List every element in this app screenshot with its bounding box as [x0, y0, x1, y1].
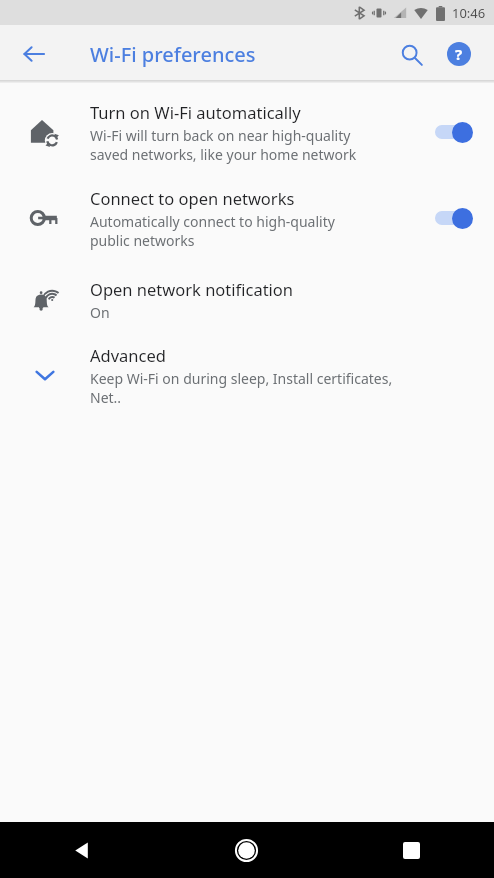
- button[interactable]: Toggle: [431, 115, 483, 149]
- button[interactable]: Back: [10, 30, 58, 78]
- button[interactable]: Toggle: [431, 201, 483, 235]
- button[interactable]: Search: [388, 31, 434, 77]
- staticText: Keep Wi-Fi on during sleep, Install cert…: [90, 369, 412, 407]
- staticText: Connect to open networks: [90, 187, 295, 209]
- button[interactable]: Advanced: [0, 339, 494, 411]
- staticText: Automatically connect to high-quality pu…: [90, 212, 335, 250]
- button[interactable]: Home: [164, 822, 329, 878]
- button[interactable]: Recent apps: [329, 822, 494, 878]
- button[interactable]: Back: [0, 822, 164, 878]
- button[interactable]: Open network notification: [0, 261, 494, 339]
- button[interactable]: Turn on Wi-Fi automatically: [0, 89, 494, 175]
- staticText: Advanced: [90, 344, 166, 366]
- staticText: ?: [455, 44, 463, 64]
- staticText: 10:46: [452, 4, 486, 22]
- button[interactable]: Help: [436, 31, 482, 77]
- button[interactable]: Connect to open networks: [0, 175, 494, 261]
- staticText: On: [90, 303, 110, 322]
- staticText: Wi-Fi preferences: [90, 41, 256, 68]
- staticText: Open network notification: [90, 278, 294, 300]
- staticText: Turn on Wi-Fi automatically: [90, 101, 301, 123]
- staticText: Wi-Fi will turn back on near high-qualit…: [90, 126, 357, 164]
